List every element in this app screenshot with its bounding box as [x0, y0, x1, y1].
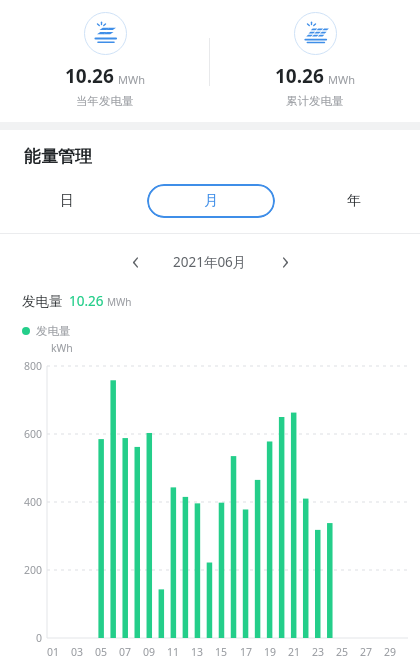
- staticText: MWh: [107, 295, 132, 309]
- staticText: 10.26: [275, 63, 324, 89]
- staticText: 0: [4, 631, 42, 645]
- staticText: 23: [307, 645, 329, 659]
- staticText: 月: [204, 192, 218, 210]
- button[interactable]: 当年发电量: [0, 0, 210, 122]
- button[interactable]: Previous month: [121, 248, 149, 276]
- staticText: 发电量: [36, 324, 71, 338]
- button[interactable]: 月: [147, 184, 275, 218]
- staticText: 21: [283, 645, 305, 659]
- staticText: 17: [235, 645, 257, 659]
- staticText: 10.26: [69, 292, 104, 310]
- staticText: 年: [347, 192, 361, 210]
- staticText: MWh: [328, 72, 356, 87]
- staticText: 25: [331, 645, 353, 659]
- staticText: 07: [114, 645, 136, 659]
- button[interactable]: 年: [287, 183, 420, 219]
- staticText: 10.26: [65, 63, 114, 89]
- button[interactable]: Next month: [271, 248, 299, 276]
- button[interactable]: 日: [0, 183, 134, 219]
- staticText: 01: [42, 645, 64, 659]
- button[interactable]: 发电量: [22, 324, 71, 338]
- staticText: 13: [186, 645, 208, 659]
- staticText: 200: [4, 563, 42, 577]
- other: 累计发电量: [294, 12, 337, 55]
- staticText: 400: [4, 495, 42, 509]
- staticText: 29: [379, 645, 401, 659]
- staticText: 累计发电量: [286, 94, 344, 108]
- staticText: 19: [259, 645, 281, 659]
- staticText: 能量管理: [24, 146, 92, 167]
- staticText: 27: [355, 645, 377, 659]
- staticText: 11: [162, 645, 184, 659]
- button[interactable]: 累计发电量: [210, 0, 420, 122]
- staticText: 发电量: [22, 293, 63, 310]
- staticText: 03: [66, 645, 88, 659]
- staticText: 2021年06月: [173, 253, 247, 271]
- staticText: 09: [138, 645, 160, 659]
- staticText: 15: [210, 645, 232, 659]
- staticText: MWh: [118, 72, 146, 87]
- staticText: 800: [4, 359, 42, 373]
- other: 当年发电量: [84, 12, 127, 55]
- staticText: 600: [4, 427, 42, 441]
- staticText: 日: [60, 192, 74, 210]
- staticText: 05: [90, 645, 112, 659]
- staticText: 当年发电量: [76, 94, 134, 108]
- staticText: kWh: [51, 341, 73, 355]
